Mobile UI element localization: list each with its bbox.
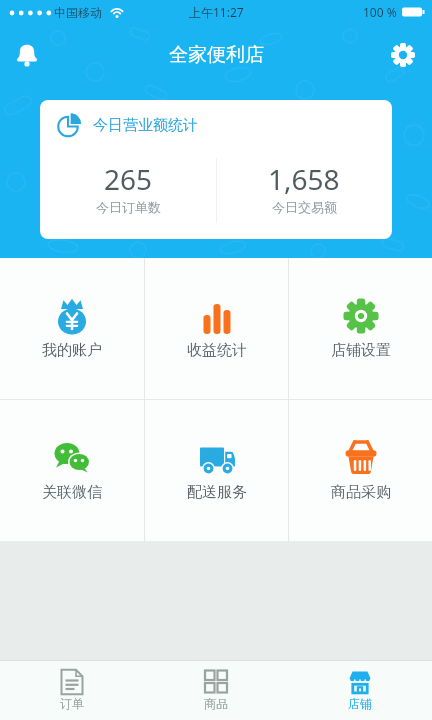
button[interactable]: 店铺设置	[289, 258, 432, 399]
button[interactable]: 今日营业额统计	[40, 100, 392, 239]
button[interactable]: 店铺	[288, 661, 432, 720]
staticText: 今日营业额统计	[93, 116, 198, 135]
staticText: 订单	[60, 696, 84, 711]
staticText: 265	[104, 160, 153, 198]
staticText: 关联微信	[42, 483, 102, 502]
staticText: 今日交易额	[272, 199, 337, 215]
button[interactable]	[386, 38, 420, 72]
staticText: 配送服务	[187, 483, 247, 502]
button[interactable]	[10, 38, 44, 72]
button[interactable]: 订单	[0, 661, 144, 720]
staticText: 今日订单数	[96, 199, 161, 215]
staticText: 商品	[204, 696, 228, 711]
staticText: 100 %	[363, 4, 397, 20]
button[interactable]: 商品采购	[289, 400, 432, 541]
button[interactable]: 配送服务	[145, 400, 288, 541]
staticText: 店铺	[348, 696, 372, 711]
staticText: 中国移动	[54, 5, 102, 20]
staticText: 上午11:27	[189, 4, 244, 20]
staticText: 店铺设置	[331, 341, 391, 360]
staticText: 商品采购	[331, 483, 391, 502]
staticText: 收益统计	[187, 341, 247, 360]
button[interactable]: 关联微信	[0, 400, 144, 541]
button[interactable]: 收益统计	[145, 258, 288, 399]
staticText: 全家便利店	[169, 43, 264, 67]
staticText: 1,658	[268, 160, 340, 198]
button[interactable]: 商品	[144, 661, 288, 720]
staticText: 我的账户	[42, 341, 102, 360]
button[interactable]: 我的账户	[0, 258, 144, 399]
